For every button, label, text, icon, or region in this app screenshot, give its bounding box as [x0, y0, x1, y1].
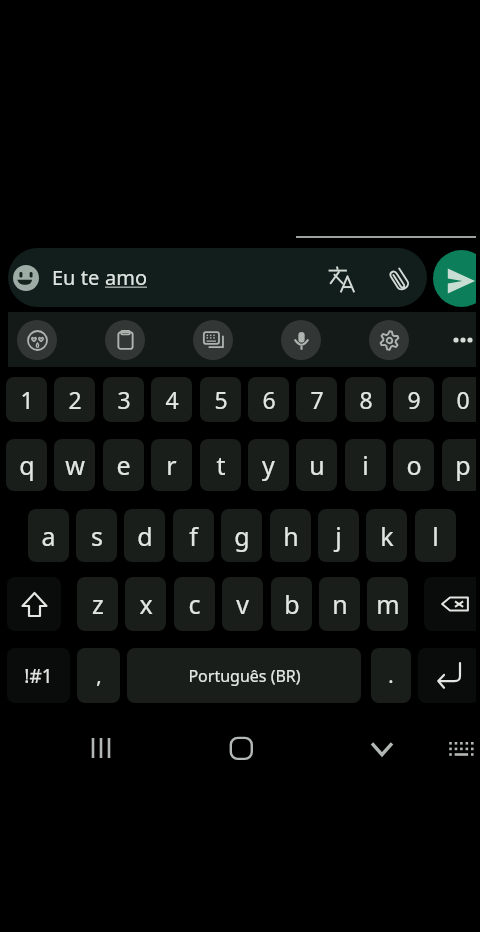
staticText: z	[92, 587, 104, 621]
staticText: 3	[117, 384, 131, 415]
staticText: u	[309, 448, 325, 482]
button[interactable]: 9	[393, 377, 434, 422]
button[interactable]: Voice input	[281, 320, 321, 360]
button[interactable]: Stickers	[17, 320, 57, 360]
button[interactable]: Home	[225, 732, 257, 764]
staticText: p	[455, 448, 471, 482]
button[interactable]: Translate	[328, 266, 355, 293]
staticText: t	[216, 448, 226, 482]
button[interactable]: More options	[448, 325, 478, 355]
button[interactable]: Recent apps	[85, 732, 117, 764]
staticText: y	[262, 448, 275, 482]
button[interactable]: Clipboard	[105, 320, 145, 360]
staticText: j	[335, 519, 342, 553]
button[interactable]: n	[319, 577, 360, 631]
button[interactable]: Shift	[7, 577, 61, 631]
button[interactable]: 6	[248, 377, 289, 422]
staticText: a	[41, 519, 56, 553]
button[interactable]: !#1	[7, 648, 70, 703]
button[interactable]: m	[367, 577, 408, 631]
staticText: r	[166, 448, 177, 482]
staticText: f	[189, 519, 198, 553]
other: Backspace	[441, 593, 469, 615]
staticText: 4	[165, 384, 179, 415]
staticText: 2	[68, 384, 82, 415]
staticText: ,	[96, 662, 102, 689]
button[interactable]: s	[76, 509, 117, 562]
staticText: v	[236, 587, 249, 621]
button[interactable]: Emoji	[8, 248, 427, 307]
button[interactable]: i	[345, 439, 386, 491]
staticText: !#1	[24, 663, 53, 689]
staticText: m	[376, 587, 400, 621]
button[interactable]: z	[77, 577, 118, 631]
staticText: g	[234, 519, 250, 553]
staticText: q	[19, 448, 35, 482]
button[interactable]: 2	[54, 377, 95, 422]
button[interactable]: Switch keyboard	[447, 740, 475, 768]
staticText: c	[188, 587, 201, 621]
button[interactable]: Send	[433, 250, 480, 307]
staticText: h	[283, 519, 299, 553]
button[interactable]: 5	[200, 377, 241, 422]
staticText: 5	[214, 384, 228, 415]
staticText: 0	[456, 384, 470, 415]
button[interactable]: Backspace	[424, 577, 480, 631]
button[interactable]: b	[271, 577, 312, 631]
button[interactable]: 4	[151, 377, 192, 422]
button[interactable]: 8	[345, 377, 386, 422]
button[interactable]: k	[366, 509, 407, 562]
button[interactable]: e	[103, 439, 144, 491]
button[interactable]: a	[28, 509, 69, 562]
button[interactable]: p	[442, 439, 480, 491]
staticText: Eu te	[52, 264, 105, 291]
button[interactable]: v	[222, 577, 263, 631]
staticText: 1	[20, 384, 34, 415]
staticText: b	[284, 587, 300, 621]
staticText: d	[137, 519, 153, 553]
staticText: s	[91, 519, 103, 553]
staticText: x	[139, 587, 153, 621]
staticText: e	[116, 448, 131, 482]
button[interactable]: 7	[296, 377, 337, 422]
button[interactable]: 1	[6, 377, 47, 422]
staticText: .	[388, 662, 394, 689]
button[interactable]: Hide keyboard	[366, 732, 398, 764]
button[interactable]: u	[296, 439, 337, 491]
staticText: o	[406, 448, 422, 482]
button[interactable]: Enter	[418, 648, 480, 703]
button[interactable]: c	[174, 577, 215, 631]
button[interactable]: Attach	[387, 267, 412, 292]
button[interactable]: .	[371, 648, 411, 703]
staticText: i	[362, 448, 369, 482]
button[interactable]: ,	[77, 648, 120, 703]
staticText: 9	[407, 384, 421, 415]
staticText: w	[65, 448, 85, 482]
button[interactable]: q	[6, 439, 47, 491]
button[interactable]: y	[248, 439, 289, 491]
button[interactable]: Settings	[369, 320, 409, 360]
staticText: amo	[105, 264, 148, 291]
button[interactable]: h	[270, 509, 311, 562]
staticText: 6	[262, 384, 276, 415]
button[interactable]: w	[54, 439, 95, 491]
button[interactable]: l	[415, 509, 456, 562]
button[interactable]: r	[151, 439, 192, 491]
button[interactable]: o	[393, 439, 434, 491]
button[interactable]: g	[221, 509, 262, 562]
button[interactable]: f	[173, 509, 214, 562]
other: Shift	[22, 592, 47, 617]
staticText: 7	[310, 384, 324, 415]
staticText: l	[432, 519, 439, 553]
button[interactable]: t	[200, 439, 241, 491]
button[interactable]: j	[318, 509, 359, 562]
other: Emoji	[13, 265, 39, 291]
button[interactable]: x	[125, 577, 166, 631]
button[interactable]: 3	[103, 377, 144, 422]
button[interactable]: d	[124, 509, 165, 562]
button[interactable]: Português (BR)	[127, 648, 361, 703]
staticText: n	[332, 587, 348, 621]
staticText: k	[380, 519, 394, 553]
button[interactable]: Switch keyboard	[193, 320, 233, 360]
button[interactable]: 0	[442, 377, 480, 422]
